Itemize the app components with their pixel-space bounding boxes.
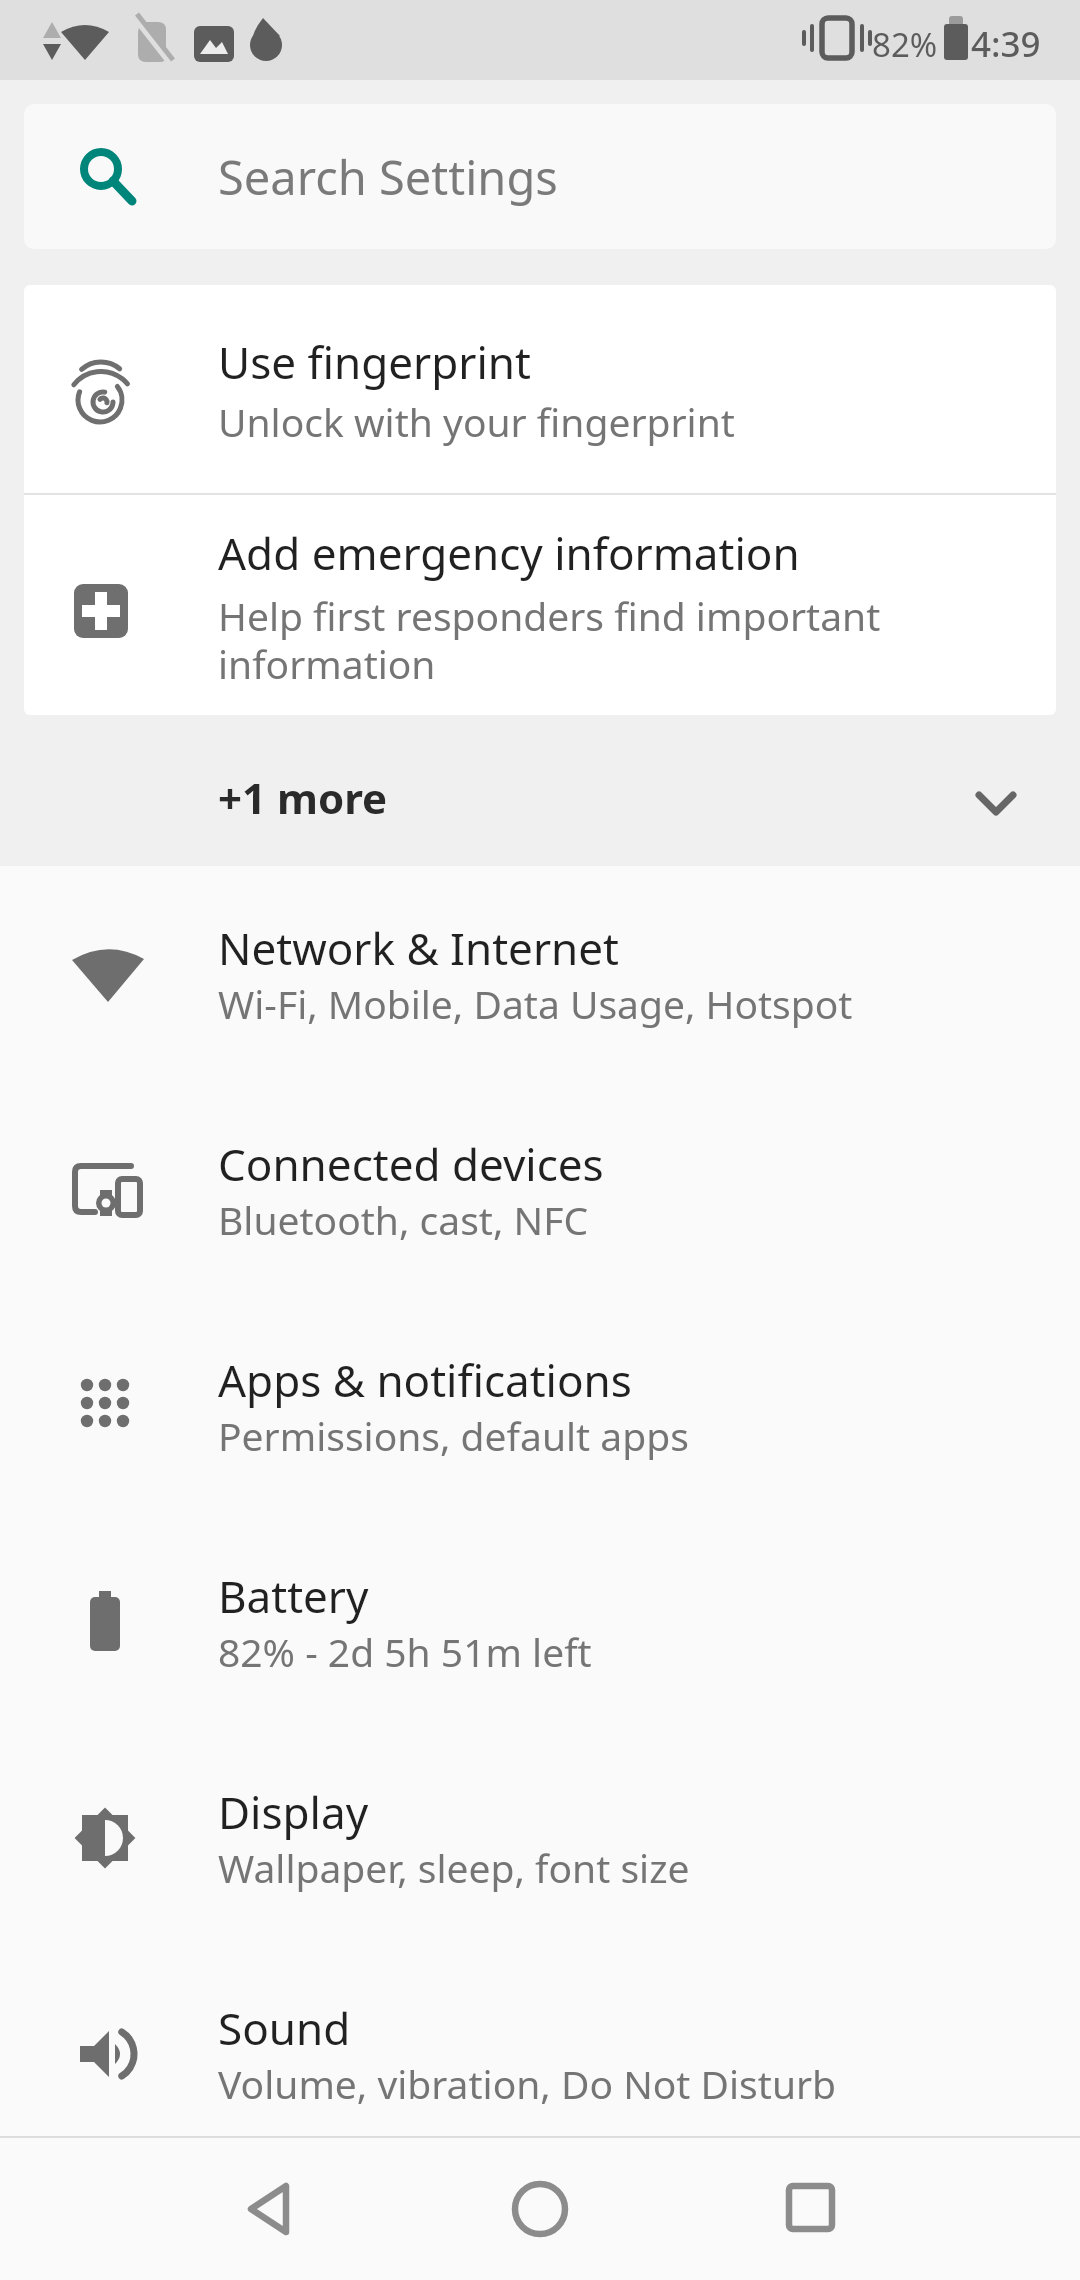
button[interactable]: Display — [0, 1730, 1080, 1946]
button[interactable] — [440, 2136, 640, 2280]
staticText: Unlock with your fingerprint — [218, 395, 735, 448]
staticText: Apps & notifications — [218, 1350, 632, 1410]
button[interactable] — [708, 2136, 908, 2280]
button[interactable]: Use fingerprint — [24, 285, 1056, 493]
button[interactable]: Network & Internet — [0, 866, 1080, 1082]
staticText: Wi-Fi, Mobile, Data Usage, Hotspot — [218, 977, 853, 1030]
staticText: Sound — [218, 1998, 351, 2058]
button[interactable]: +1 more — [0, 715, 1080, 866]
staticText: Permissions, default apps — [218, 1409, 689, 1462]
button[interactable]: Apps & notifications — [0, 1298, 1080, 1514]
staticText: 82% - 2d 5h 51m left — [218, 1625, 592, 1678]
button[interactable] — [172, 2136, 372, 2280]
button[interactable]: Battery — [0, 1514, 1080, 1730]
staticText: Battery — [218, 1566, 369, 1626]
staticText: Bluetooth, cast, NFC — [218, 1193, 589, 1246]
button[interactable]: Search Settings — [24, 104, 1056, 249]
button[interactable]: Add emergency information — [24, 495, 1056, 715]
staticText: Help first responders find important inf… — [218, 589, 881, 690]
button[interactable]: Sound — [0, 1946, 1080, 2162]
staticText: Display — [218, 1782, 369, 1842]
staticText: Wallpaper, sleep, font size — [218, 1841, 690, 1894]
staticText: Volume, vibration, Do Not Disturb — [218, 2057, 837, 2110]
staticText: Add emergency information — [218, 523, 800, 583]
staticText: +1 more — [218, 769, 388, 826]
button[interactable]: Connected devices — [0, 1082, 1080, 1298]
staticText: 4:39 — [971, 20, 1041, 68]
staticText: Network & Internet — [218, 918, 619, 978]
staticText: Connected devices — [218, 1134, 604, 1194]
staticText: Use fingerprint — [218, 332, 531, 392]
staticText: 82% — [872, 22, 938, 67]
staticText: Search Settings — [218, 145, 558, 209]
